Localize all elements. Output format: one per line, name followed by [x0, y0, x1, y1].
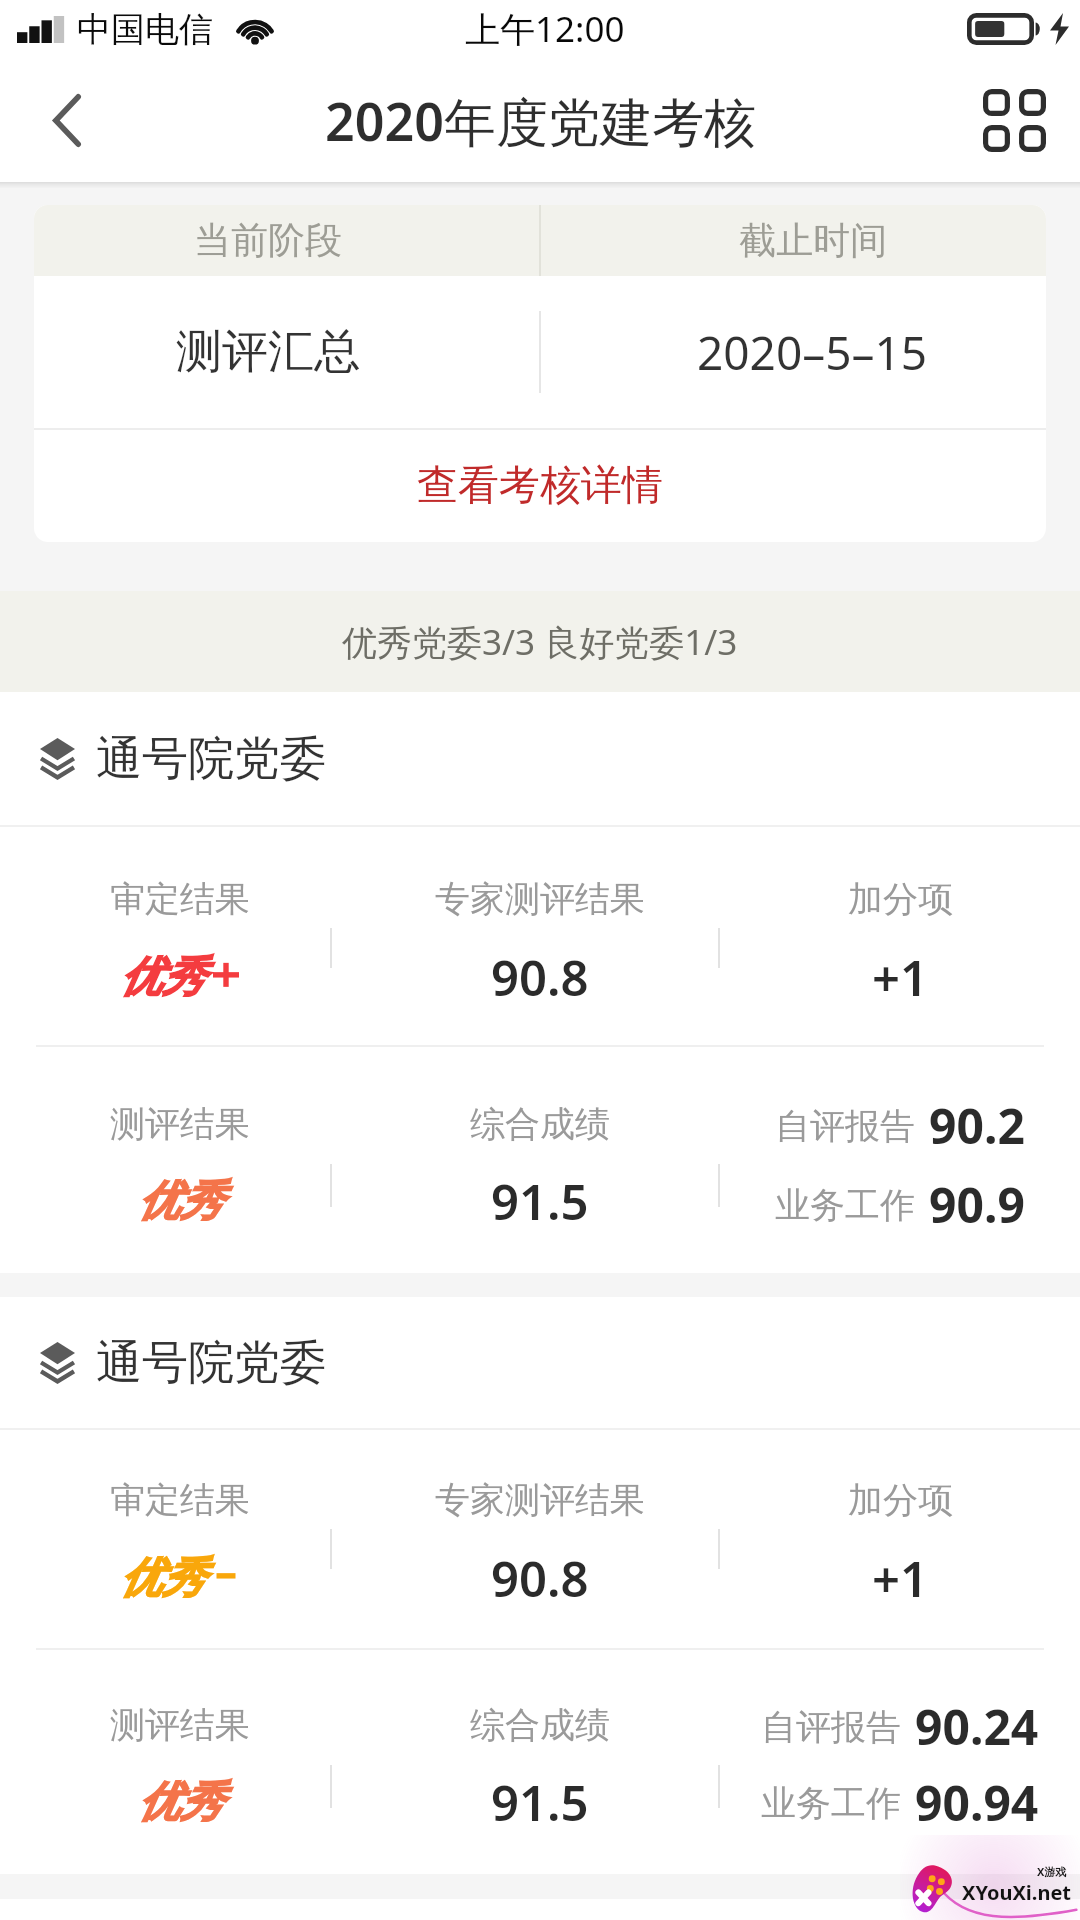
staticText: 当前阶段 [194, 217, 342, 264]
staticText: 2020年度党建考核 [325, 85, 756, 156]
staticText: 91.5 [491, 1168, 589, 1235]
staticText: 测评结果 [110, 1703, 250, 1747]
staticText: 综合成绩 [470, 1703, 610, 1747]
staticText: 2020–5–15 [697, 321, 928, 384]
button[interactable]: 更多 [948, 58, 1080, 182]
staticText: 查看考核详情 [417, 460, 663, 512]
staticText: +1 [872, 944, 929, 1011]
button[interactable]: 查看考核详情 [34, 430, 1046, 542]
button[interactable]: 审定结果 [0, 827, 1080, 1045]
button[interactable]: 审定结果 [0, 1430, 1080, 1648]
staticText: 90.8 [491, 1545, 589, 1612]
button[interactable]: 测评结果 [0, 1047, 1080, 1273]
staticText: 90.9 [929, 1172, 1025, 1237]
button[interactable]: 测评结果 [0, 1650, 1080, 1874]
staticText: 审定结果 [110, 1478, 250, 1522]
staticText: 自评报告 [761, 1705, 901, 1749]
button[interactable]: 通号院党委 [0, 1297, 1080, 1428]
staticText: 自评报告 [775, 1104, 915, 1148]
staticText: 90.8 [491, 944, 589, 1011]
staticText: 上午12:00 [465, 5, 625, 53]
staticText: 90.24 [915, 1694, 1039, 1759]
staticText: 通号院党委 [96, 1334, 326, 1392]
staticText: 审定结果 [110, 877, 250, 921]
staticText: 优秀党委3/3 良好党委1/3 [342, 618, 738, 666]
button[interactable]: 返回 [0, 58, 134, 182]
staticText: 业务工作 [775, 1183, 915, 1227]
staticText: 优秀 [138, 1175, 222, 1228]
staticText: X游戏 [1037, 1864, 1067, 1879]
staticText: 优秀 [138, 1776, 222, 1829]
staticText: 测评结果 [110, 1102, 250, 1146]
staticText: XYouXi.net [962, 1879, 1072, 1906]
staticText: 90.94 [915, 1770, 1039, 1835]
staticText: 业务工作 [761, 1781, 901, 1825]
staticText: 通号院党委 [96, 730, 326, 788]
staticText: 中国电信 [77, 8, 213, 51]
staticText: 专家测评结果 [435, 1478, 645, 1522]
staticText: 优秀 [120, 1552, 204, 1605]
staticText: 91.5 [491, 1769, 589, 1836]
staticText: 专家测评结果 [435, 877, 645, 921]
button[interactable]: 通号院党委 [0, 692, 1080, 825]
staticText: 截止时间 [739, 217, 887, 264]
staticText: 加分项 [848, 877, 953, 921]
staticText: 加分项 [848, 1478, 953, 1522]
staticText: 90.2 [929, 1093, 1025, 1158]
staticText: +1 [872, 1545, 929, 1612]
staticText: 测评汇总 [176, 323, 360, 381]
staticText: 优秀 [120, 951, 204, 1004]
staticText: 综合成绩 [470, 1102, 610, 1146]
